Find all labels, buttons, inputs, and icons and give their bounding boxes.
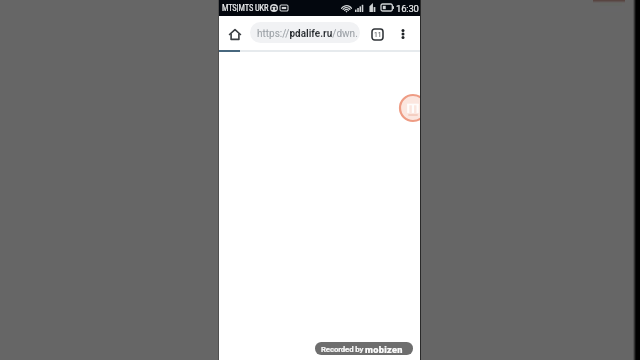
button[interactable]: https://pdalife.ru/dwn. (250, 22, 360, 43)
staticText: 11 (374, 31, 382, 39)
button[interactable]: Home (224, 23, 246, 45)
staticText: mobizen (365, 344, 403, 355)
staticText: MTS|MTS UKR (222, 3, 269, 13)
button[interactable]: More options (392, 23, 414, 45)
staticText: Recorded by (321, 345, 364, 354)
button[interactable]: Tabs, 11 open (366, 23, 388, 45)
staticText: https://pdalife.ru/dwn. (257, 28, 358, 40)
staticText: 16:30 (396, 3, 419, 14)
button[interactable]: Recorded by Mobizen (315, 342, 413, 355)
